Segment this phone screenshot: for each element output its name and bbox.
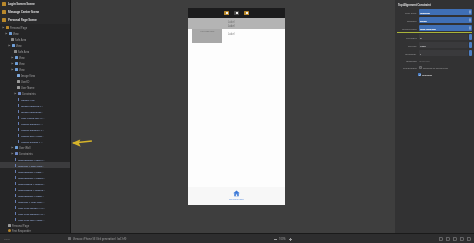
staticText: Second Item [402,27,417,30]
button[interactable]: View.leading = View.l... [0,192,70,198]
button[interactable]: Personal Page tab [188,187,285,205]
staticText: Personal Page [10,26,28,29]
button[interactable]: Priority [395,41,474,49]
staticText: User Wall.leading = U... [18,212,45,215]
button[interactable]: Image View [192,29,222,43]
button[interactable]: Stepper [469,50,472,56]
button[interactable]: View [0,54,70,60]
button[interactable]: Editor option 4 [460,237,464,241]
button[interactable]: View [0,42,70,48]
staticText: User Wall.top = View.... [18,218,45,221]
button[interactable]: Editor option 2 [446,237,450,241]
button[interactable]: First Item [395,8,474,16]
button[interactable]: Device preview [68,237,71,240]
button[interactable]: Zoom out [273,237,277,241]
button[interactable]: Constraints [0,90,70,96]
staticText: UserID.leading = I... [21,128,45,131]
staticText: View.leading = View.tr... [18,176,46,179]
staticText: First Item [405,11,417,14]
button[interactable]: Image View [0,72,70,78]
staticText: View [16,44,22,47]
button[interactable]: Stepper [469,42,472,48]
button[interactable]: View [0,60,70,66]
button[interactable]: Toolbar button [234,11,239,15]
staticText: 1 [420,52,467,55]
staticText: Priority [408,44,417,47]
button[interactable]: Personal Page [0,24,70,30]
staticText: View as: iPhone SE (3rd generation) (wC … [73,237,127,241]
button[interactable]: User Name.top = I... [0,114,70,120]
staticText: Top Alignment Constraint [398,3,431,7]
button[interactable]: Personal Page Scene [0,16,70,24]
staticText: 0 [420,36,467,39]
button[interactable]: Toolbar button [224,11,229,15]
button[interactable]: Installed [395,71,474,78]
button[interactable]: Image View.leadi... [0,108,70,114]
button[interactable]: Personal Page [0,222,70,228]
button[interactable]: First Responder [0,228,70,233]
button[interactable]: Constant [395,33,474,41]
button[interactable]: User Wall.top = View.... [0,216,70,222]
button[interactable]: UserID.trailing = ... [0,138,70,144]
staticText: Constraints [19,152,33,155]
button[interactable]: Editor option 5 [467,237,471,241]
button[interactable]: UserID.top = User... [0,132,70,138]
button[interactable]: Stepper [469,34,472,40]
button[interactable]: Safe Area [0,36,70,42]
button[interactable]: View.top = User Wall.... [0,198,70,204]
button[interactable]: Second Item [395,24,474,32]
button[interactable]: View.trailing = View.le... [0,186,70,192]
button[interactable]: Relation [395,16,474,24]
button[interactable]: Message Center Scene [0,8,70,16]
staticText: User Wall [19,146,31,149]
button[interactable]: Image View.top =... [0,102,70,108]
button[interactable]: Height = 68 [0,96,70,102]
staticText: Remove at build time [423,66,448,69]
staticText: View.trailing = View.tr... [18,182,45,185]
button[interactable]: View.leading = Safe A... [0,156,70,162]
button[interactable]: Multiplier [395,49,474,57]
staticText: Relation [407,19,417,22]
button[interactable]: View [0,66,70,72]
staticText: User Name.top = I... [21,116,45,119]
staticText: User Wall.centerY = U... [18,206,46,209]
staticText: Height = 68 [21,98,35,101]
button[interactable]: UserID.leading = I... [0,126,70,132]
button[interactable]: Zoom in [288,237,292,241]
staticText: First Responder [12,229,31,232]
button[interactable]: Editor option 3 [453,237,457,241]
button[interactable]: User Wall [0,144,70,150]
staticText: Safe Area [18,50,30,53]
staticText: View [19,56,25,59]
button[interactable]: UserID.leading = ... [0,120,70,126]
staticText: UIImageView [200,30,215,33]
button[interactable]: Placeholder [395,64,474,71]
staticText: Safe Area [15,38,27,41]
button[interactable]: View.leading = View.tr... [0,174,70,180]
button[interactable]: User Name [0,84,70,90]
button[interactable]: View.trailing = View.tr... [0,180,70,186]
staticText: Identifier [419,59,430,62]
staticText: View [13,32,19,35]
button[interactable]: View.top = Safe Area... [0,162,70,168]
button[interactable]: Constraints [0,150,70,156]
button[interactable]: User Wall.centerY = U... [0,204,70,210]
button[interactable]: View [0,30,70,36]
button[interactable]: User Wall.leading = U... [0,210,70,216]
staticText: Filter [4,237,10,240]
staticText: View.trailing = View.le... [18,188,46,191]
button[interactable]: UserID [0,78,70,84]
button[interactable]: Editor option 1 [439,237,443,241]
button[interactable]: View.leading = View.... [0,168,70,174]
staticText: Constant [406,36,417,39]
staticText: Placeholder [403,66,417,69]
staticText: View.Top [420,11,469,14]
staticText: 100% [279,237,286,241]
staticText: UserID.top = User... [21,134,44,137]
button[interactable]: Login Screen Scene [0,0,70,8]
staticText: UserID.trailing = ... [21,140,43,143]
button[interactable]: Toolbar button [244,11,249,15]
button[interactable]: Safe Area [0,48,70,54]
staticText: Multiplier [405,52,417,55]
staticText: View.leading = Safe A... [18,158,45,161]
